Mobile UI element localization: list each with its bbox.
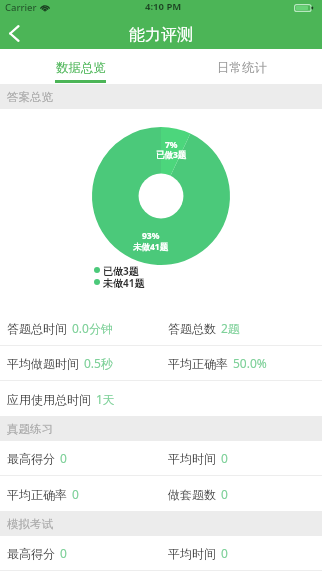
staticText: 平均正确率 [168,356,228,371]
staticText: 答题总数 [168,321,216,336]
staticText: 平均正确率 [7,487,67,502]
staticText: 平均时间 [168,546,216,561]
staticText: 平均做题时间 [7,356,79,371]
staticText: 0.5秒 [84,355,113,371]
staticText: Carrier [5,1,37,14]
staticText: 应用使用总时间 [7,392,91,407]
staticText: 93% [142,230,160,242]
staticText: 2题 [221,320,240,336]
button[interactable]: 数据总览 [0,49,161,84]
staticText: 日常统计 [217,60,267,76]
staticText: 50.0% [233,355,267,371]
staticText: 4:10 PM [145,0,182,13]
staticText: 0 [221,450,228,466]
staticText: 数据总览 [56,60,106,76]
staticText: 0.0分钟 [72,320,113,336]
staticText: 已做3题 [156,149,187,161]
staticText: 已做3题 [103,264,139,276]
staticText: 真题练习 [7,422,53,436]
staticText: 未做41题 [133,241,169,253]
staticText: 做套题数 [168,487,216,502]
staticText: 平均时间 [168,451,216,466]
staticText: 0 [72,486,79,502]
staticText: 最高得分 [7,451,55,466]
staticText: 最高得分 [7,546,55,561]
button[interactable]: Back [0,20,30,49]
staticText: 0 [60,545,67,561]
staticText: 未做41题 [103,276,145,288]
staticText: 0 [221,486,228,502]
staticText: 0 [221,545,228,561]
staticText: 答案总览 [7,90,53,104]
staticText: 答题总时间 [7,321,67,336]
staticText: 0 [60,450,67,466]
staticText: 模拟考试 [7,517,53,531]
staticText: 能力评测 [129,25,193,45]
staticText: 7% [165,139,178,151]
button[interactable]: 日常统计 [161,49,322,84]
staticText: 1天 [96,391,115,407]
